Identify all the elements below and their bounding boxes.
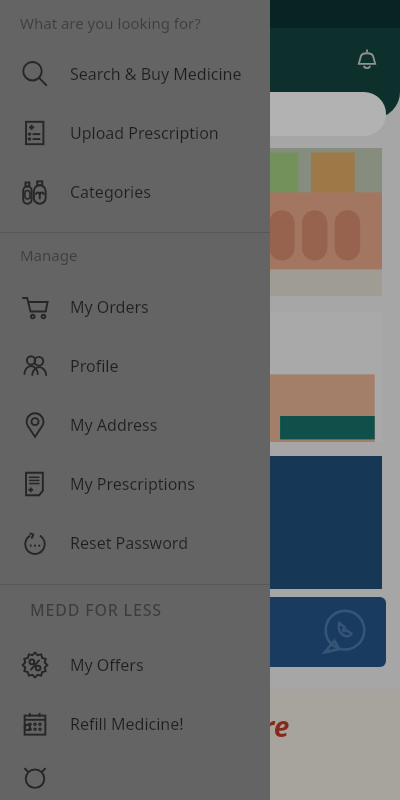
staticText: My Offers <box>70 654 144 676</box>
button[interactable]: My Address <box>0 395 270 454</box>
button[interactable]: Search & Buy Medicine <box>0 44 270 103</box>
button[interactable]: Manage Reminder <box>18 456 382 589</box>
staticText: Beauty Care <box>129 707 290 745</box>
button[interactable]: Search products... <box>16 92 386 136</box>
staticText: My Prescriptions <box>70 473 195 495</box>
staticText: My Address <box>70 414 158 436</box>
button[interactable]: Refill Medicine! <box>0 694 270 753</box>
staticText: My Orders <box>70 296 149 318</box>
staticText: Search products... <box>34 105 152 124</box>
button[interactable]: Profile <box>0 336 270 395</box>
button[interactable]: My Offers <box>0 635 270 694</box>
button[interactable]: Notifications <box>348 40 386 78</box>
staticText: Reset Password <box>70 532 188 554</box>
button[interactable]: My Orders <box>0 277 270 336</box>
button[interactable]: Order on WhatsApp <box>18 597 386 667</box>
staticText: MEDD <box>58 44 129 75</box>
button[interactable] <box>0 753 270 800</box>
staticText: Refill Medicine! <box>70 713 184 735</box>
staticText: MEDD FOR LESS <box>30 599 162 621</box>
button[interactable]: Upload Prescription <box>0 103 270 162</box>
staticText: Manage <box>20 245 78 265</box>
button[interactable]: Open navigation menu <box>14 42 48 76</box>
staticText: Search & Buy Medicine <box>70 63 242 85</box>
staticText: Categories <box>70 181 151 203</box>
staticText: Upload Prescription <box>70 122 219 144</box>
staticText: What are you looking for? <box>20 13 201 33</box>
button[interactable]: Reset Password <box>0 513 270 572</box>
staticText: Profile <box>70 355 119 377</box>
button[interactable]: My Prescriptions <box>0 454 270 513</box>
button[interactable]: Categories <box>0 162 270 221</box>
staticText: Manage Reminder <box>171 537 230 568</box>
